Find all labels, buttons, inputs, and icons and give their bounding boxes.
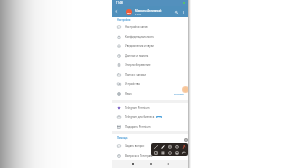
staticText: Telegram Premium <box>125 106 150 110</box>
staticText: Помощь <box>117 136 128 139</box>
button[interactable]: Пиксели <box>160 150 165 155</box>
staticText: Энергосбережение <box>125 63 151 67</box>
staticText: Настройки <box>117 18 131 21</box>
staticText: Данные и память <box>125 54 149 58</box>
staticText: NEW <box>157 116 161 118</box>
button[interactable]: Фигура <box>167 150 172 155</box>
button[interactable]: Текст <box>181 144 186 149</box>
staticText: Настройки чатов <box>125 25 148 29</box>
staticText: Устройства <box>125 82 140 86</box>
button[interactable]: Маркер <box>160 144 165 149</box>
staticText: 11:08 <box>116 1 123 5</box>
button[interactable]: Telegram для бизнеса <box>112 112 188 122</box>
button[interactable]: Назад <box>165 161 171 167</box>
button[interactable]: Стикер <box>167 144 172 149</box>
staticText: Вопросы о Телеграм <box>125 154 153 158</box>
button[interactable]: Конфиденциальность <box>112 32 188 41</box>
button[interactable]: Ручка <box>153 144 158 149</box>
button[interactable]: Подарить Premium <box>112 122 188 131</box>
button[interactable]: Вопросы о Телеграм <box>112 151 188 160</box>
button[interactable]: Энергосбережение <box>112 60 188 70</box>
button[interactable]: Назад <box>114 9 119 14</box>
staticText: Уведомления и звуки <box>125 44 154 48</box>
button[interactable]: Папки с чатами <box>112 70 188 79</box>
button[interactable]: Язык <box>112 89 188 98</box>
button[interactable]: Поиск <box>173 9 179 15</box>
button[interactable]: Ещё <box>180 9 186 15</box>
staticText: в сети <box>135 13 141 16</box>
staticText: Telegram для бизнеса <box>125 115 155 119</box>
button[interactable]: Обрезка <box>174 150 179 155</box>
button[interactable]: Последние <box>130 161 136 167</box>
staticText: МА <box>127 11 131 14</box>
staticText: Подарить Premium <box>125 125 151 129</box>
button[interactable]: Telegram Premium <box>112 103 188 112</box>
button[interactable]: Домой <box>148 161 154 167</box>
button[interactable]: Уведомления и звуки <box>112 41 188 51</box>
staticText: Задать вопрос <box>125 144 145 148</box>
button[interactable]: Данные и память <box>112 51 188 60</box>
button[interactable]: Задать вопрос <box>112 141 188 151</box>
button[interactable]: Закрыть <box>184 138 188 142</box>
staticText: Язык <box>125 92 132 96</box>
button[interactable]: Эмодзи <box>174 144 179 149</box>
staticText: Конфиденциальность <box>125 35 155 39</box>
staticText: Русский <box>174 92 184 95</box>
staticText: Папки с чатами <box>125 73 146 77</box>
button[interactable]: Настройки чатов <box>112 22 188 32</box>
button[interactable]: Вперёд <box>153 150 158 155</box>
button[interactable]: Устройства <box>112 79 188 89</box>
staticText: Максим Активный <box>135 9 162 13</box>
button[interactable]: Отменить <box>181 150 186 155</box>
